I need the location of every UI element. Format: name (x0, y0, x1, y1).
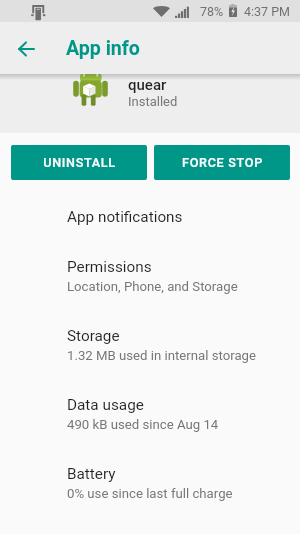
staticText: Battery (67, 465, 116, 483)
staticText: 1.32 MB used in internal storage (67, 348, 257, 363)
staticText: Location, Phone, and Storage (67, 279, 238, 294)
staticText: 78% (200, 4, 224, 19)
staticText: Storage (67, 327, 120, 345)
button[interactable]: Back (6, 29, 46, 69)
button[interactable]: App notifications (0, 195, 300, 245)
button[interactable]: Battery (0, 452, 300, 521)
staticText: quear (128, 76, 167, 94)
staticText: Data usage (67, 396, 144, 414)
button[interactable]: Permissions (0, 245, 300, 314)
button[interactable]: UNINSTALL (11, 145, 147, 180)
staticText: App info (66, 37, 140, 60)
staticText: Permissions (67, 258, 152, 276)
other: Cast screen (29, 3, 47, 21)
staticText: Installed (128, 94, 178, 109)
staticText: UNINSTALL (43, 155, 116, 170)
staticText: App notifications (67, 208, 183, 226)
button[interactable]: FORCE STOP (154, 145, 290, 180)
staticText: 490 kB used since Aug 14 (67, 417, 219, 432)
staticText: 0% use since last full charge (67, 486, 233, 501)
button[interactable]: Data usage (0, 383, 300, 452)
staticText: 4:37 PM (244, 4, 291, 19)
staticText: FORCE STOP (182, 155, 263, 170)
button[interactable]: Storage (0, 314, 300, 383)
